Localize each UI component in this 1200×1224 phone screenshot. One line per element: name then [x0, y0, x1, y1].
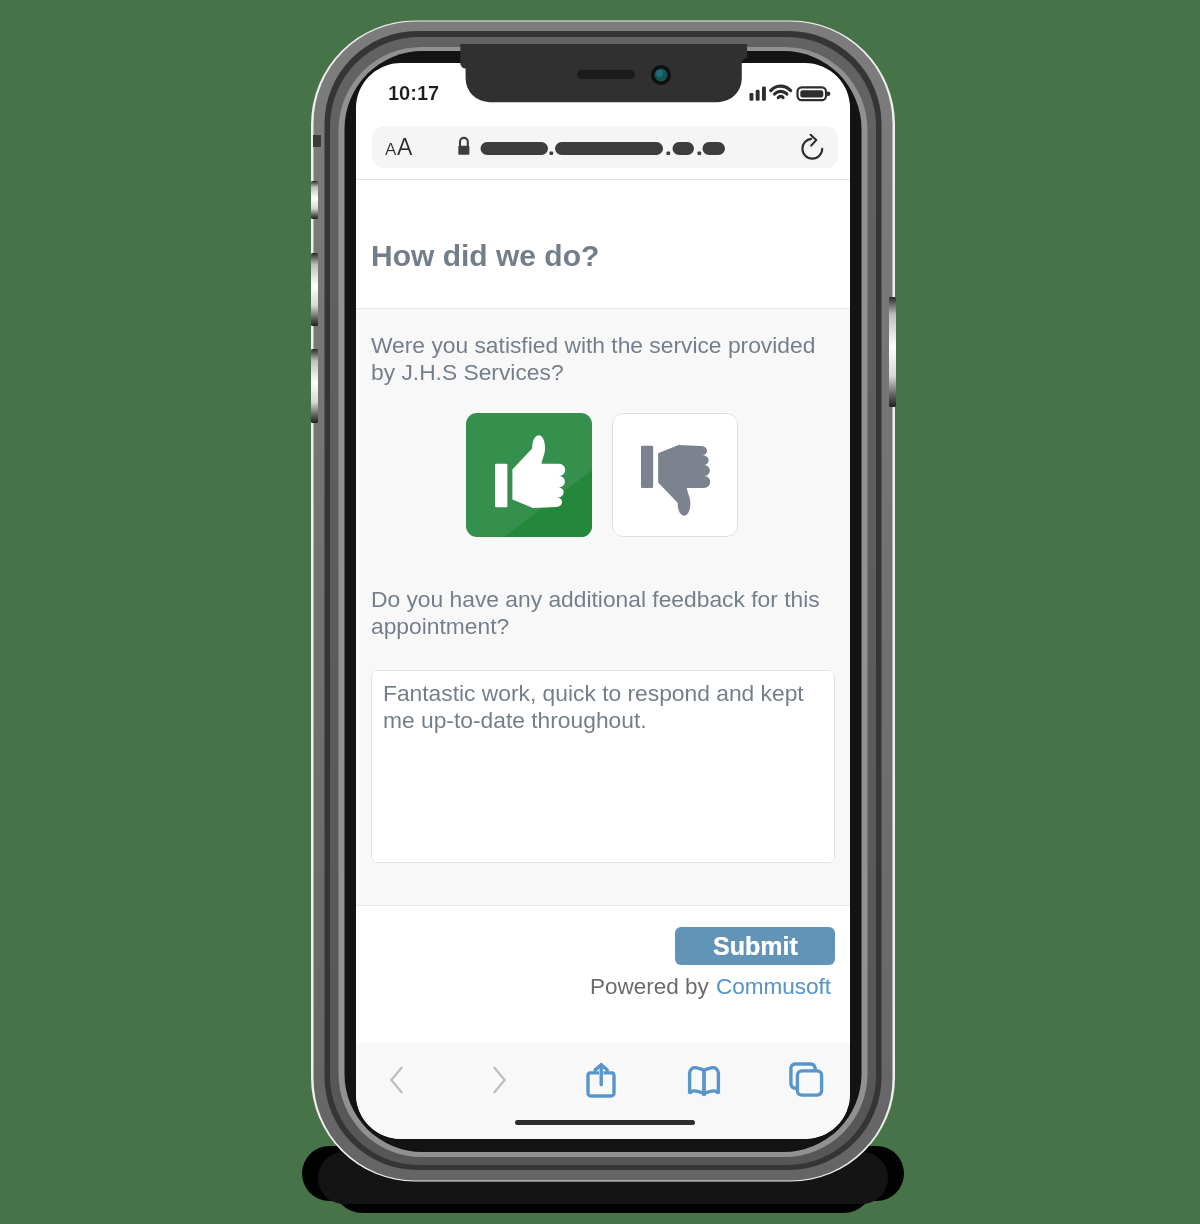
staticText: Do you have any additional feedback for … — [371, 586, 831, 638]
staticText: Submit — [713, 932, 798, 960]
staticText: Were you satisfied with the service prov… — [371, 332, 823, 384]
button[interactable]: Forward — [466, 1047, 532, 1113]
button[interactable]: Commusoft — [716, 974, 832, 999]
button[interactable]: Feedback text field — [371, 670, 835, 863]
staticText: A — [385, 140, 397, 159]
staticText: How did we do? — [371, 239, 600, 273]
button[interactable]: Bookmarks — [671, 1047, 737, 1113]
button[interactable]: Reload page — [800, 134, 826, 160]
staticText: 10:17 — [388, 82, 440, 104]
button[interactable]: Thumbs up, satisfied — [466, 413, 592, 537]
staticText: Powered by — [590, 974, 716, 999]
button[interactable]: Submit — [675, 927, 835, 965]
button[interactable]: Thumbs down, not satisfied — [612, 413, 738, 537]
button[interactable]: Back — [364, 1047, 430, 1113]
button[interactable]: Address bar — [372, 126, 838, 168]
staticText: Fantastic work, quick to respond and kep… — [383, 680, 813, 732]
button[interactable]: Share — [568, 1047, 634, 1113]
button[interactable]: Tabs — [773, 1047, 839, 1113]
staticText: A — [397, 134, 413, 160]
